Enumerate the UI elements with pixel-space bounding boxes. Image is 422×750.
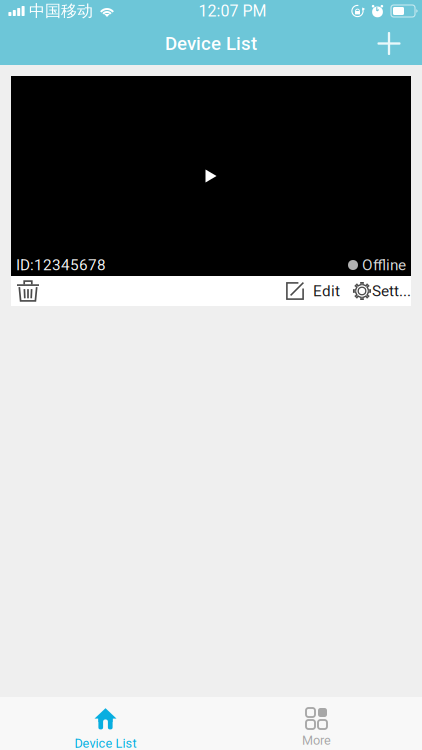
staticText: More	[302, 733, 331, 748]
staticText: Edit	[313, 282, 340, 300]
button[interactable]: Device List	[0, 697, 211, 750]
staticText: Device List	[165, 33, 257, 54]
button[interactable]: Edit	[286, 276, 340, 306]
staticText: Offline	[362, 256, 406, 274]
staticText: ID:12345678	[16, 256, 106, 274]
button[interactable]: More	[211, 697, 422, 750]
staticText: Sett...	[372, 282, 411, 300]
staticText: 12:07 PM	[198, 2, 266, 20]
button[interactable]: Delete	[11, 276, 71, 306]
button[interactable]: Sett...	[340, 276, 411, 306]
staticText: 中国移动	[29, 1, 93, 21]
staticText: Device List	[74, 736, 136, 750]
button[interactable]: Add device	[366, 22, 412, 65]
